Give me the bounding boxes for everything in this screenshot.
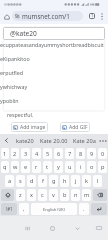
staticText: c <box>41 191 44 199</box>
button[interactable]: 5 <box>43 148 52 159</box>
button[interactable]: Hide keyboard <box>71 222 83 234</box>
button[interactable]: , <box>19 203 29 215</box>
button[interactable]: t <box>43 161 52 173</box>
button[interactable]: 8 <box>76 148 85 159</box>
button[interactable]: a <box>5 175 14 187</box>
button[interactable]: . <box>79 203 89 215</box>
staticText: m <box>84 191 90 199</box>
staticText: eKipankitoo <box>0 55 30 62</box>
staticText: v <box>52 191 55 199</box>
button[interactable]: s <box>16 175 25 187</box>
button[interactable]: Home <box>1 11 12 22</box>
staticText: . <box>83 205 85 213</box>
button[interactable]: More options <box>97 11 107 21</box>
button[interactable]: q <box>1 161 9 173</box>
button[interactable]: r <box>32 161 41 173</box>
button[interactable]: g <box>49 175 58 187</box>
button[interactable]: e <box>21 161 30 173</box>
button[interactable]: 0 <box>98 148 107 159</box>
button[interactable]: x <box>27 189 36 201</box>
button[interactable]: 7 <box>65 148 74 159</box>
staticText: y <box>57 163 60 171</box>
staticText: Kate 20a <box>73 137 96 145</box>
button[interactable]: Backspace <box>93 189 107 201</box>
staticText: respectful. <box>7 111 34 118</box>
button[interactable]: Tabs <box>87 11 97 21</box>
staticText: t <box>46 163 49 171</box>
button[interactable]: 4 <box>32 148 41 159</box>
staticText: b <box>63 191 67 199</box>
staticText: g <box>52 177 56 185</box>
button[interactable]: Enter <box>91 203 107 215</box>
staticText: z <box>19 191 22 199</box>
button[interactable]: @kate20 <box>3 27 105 40</box>
button[interactable]: 9 <box>87 148 96 159</box>
button[interactable]: u <box>65 161 74 173</box>
staticText: 6 <box>57 150 61 158</box>
button[interactable]: p <box>98 161 107 173</box>
staticText: 2 <box>13 150 17 158</box>
staticText: 0 <box>101 150 105 158</box>
staticText: e <box>24 163 28 171</box>
staticText: h <box>63 177 67 185</box>
button[interactable]: h <box>60 175 69 187</box>
button[interactable]: English (UK) <box>31 203 77 215</box>
staticText: p <box>101 163 105 171</box>
button[interactable]: More suggestions <box>98 134 108 147</box>
button[interactable]: z <box>16 189 25 201</box>
button[interactable]: !#1 <box>1 203 17 215</box>
staticText: Add GIF <box>69 124 88 131</box>
staticText: n <box>74 191 78 199</box>
button[interactable]: Previous suggestions <box>0 134 12 147</box>
button[interactable]: mumsnet.com/1 <box>12 11 83 21</box>
staticText: 1 <box>91 13 94 19</box>
staticText: ecuppateasandayummyshortbreadbiscuit <box>0 41 104 48</box>
button[interactable]: c <box>38 189 47 201</box>
button[interactable]: d <box>27 175 36 187</box>
button[interactable]: Shift <box>1 189 14 201</box>
button[interactable]: Add image <box>11 122 48 132</box>
staticText: erputfled <box>0 69 24 76</box>
button[interactable]: n <box>71 189 80 201</box>
staticText: mumsnet.com/1 <box>22 12 70 20</box>
button[interactable]: v <box>49 189 58 201</box>
staticText: q <box>3 163 7 171</box>
button[interactable]: Switch keyboard <box>93 222 105 234</box>
button[interactable]: Add GIF <box>60 122 90 132</box>
button[interactable]: 2 <box>11 148 19 159</box>
button[interactable]: 1 <box>1 148 9 159</box>
staticText: 5 <box>46 150 50 158</box>
staticText: English (UK) <box>43 207 65 212</box>
staticText: a <box>8 177 12 185</box>
staticText: Add image <box>20 124 46 131</box>
button[interactable]: 6 <box>54 148 63 159</box>
button[interactable]: m <box>82 189 91 201</box>
button[interactable]: 3 <box>21 148 30 159</box>
staticText: i <box>80 163 82 171</box>
staticText: d <box>30 177 34 185</box>
staticText: o <box>90 163 94 171</box>
button[interactable]: Kate 20.00 <box>38 134 70 147</box>
button[interactable]: y <box>54 161 63 173</box>
staticText: Kate 20.00 <box>40 137 68 145</box>
staticText: !#1 <box>6 206 13 212</box>
button[interactable]: Recents <box>21 222 33 234</box>
button[interactable]: b <box>60 189 69 201</box>
button[interactable]: o <box>87 161 96 173</box>
button[interactable]: l <box>93 175 102 187</box>
button[interactable]: kate20 <box>12 134 38 147</box>
button[interactable]: Kate 20a <box>70 134 98 147</box>
staticText: 7 <box>68 150 72 158</box>
button[interactable]: j <box>71 175 80 187</box>
staticText: k <box>85 177 88 185</box>
staticText: u <box>68 163 72 171</box>
button[interactable]: w <box>11 161 19 173</box>
button[interactable]: i <box>76 161 85 173</box>
button[interactable]: Home <box>46 222 58 234</box>
button[interactable]: f <box>38 175 47 187</box>
staticText: ywhichway <box>0 83 28 90</box>
staticText: l <box>97 177 99 185</box>
staticText: kate20 <box>16 137 34 145</box>
button[interactable]: k <box>82 175 91 187</box>
staticText: 4 <box>35 150 39 158</box>
